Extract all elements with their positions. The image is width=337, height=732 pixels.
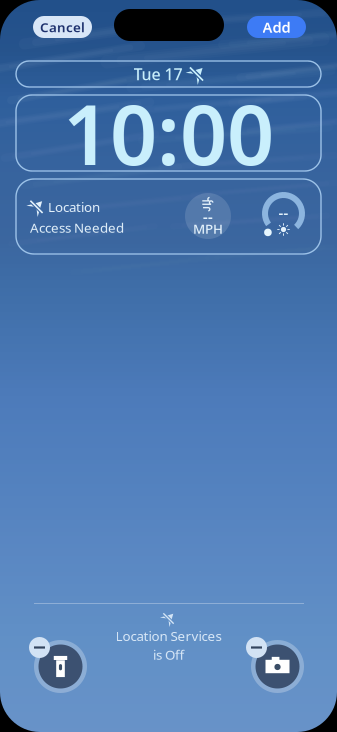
staticText: --: [203, 207, 213, 226]
staticText: 10:00: [63, 78, 274, 188]
staticText: Add: [262, 17, 290, 37]
staticText: Location: [48, 198, 100, 216]
staticText: --: [278, 203, 288, 222]
staticText: Access Needed: [30, 219, 124, 236]
button[interactable]: Remove Flashlight: [29, 637, 50, 658]
staticText: Tue 17: [133, 63, 182, 85]
button[interactable]: Cancel: [33, 16, 92, 38]
button[interactable]: Flashlight: [34, 640, 87, 693]
staticText: Cancel: [40, 18, 85, 36]
button[interactable]: Location: [16, 179, 321, 254]
staticText: is Off: [153, 646, 184, 663]
button[interactable]: Remove Camera: [246, 637, 267, 658]
staticText: MPH: [193, 220, 223, 237]
button[interactable]: Tue 17: [16, 61, 321, 87]
staticText: Location Services: [115, 627, 221, 645]
button[interactable]: Add: [247, 16, 306, 38]
button[interactable]: 10:00: [16, 95, 321, 171]
button[interactable]: Camera: [251, 640, 304, 693]
